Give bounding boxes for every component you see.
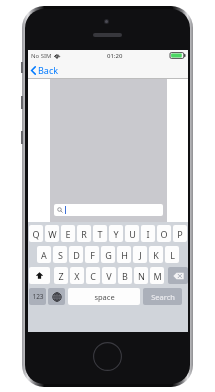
button[interactable]: R — [77, 225, 91, 242]
staticText: J — [139, 249, 142, 261]
button[interactable]: Delete — [168, 267, 188, 284]
staticText: R — [81, 228, 87, 240]
button[interactable]: Z — [54, 267, 68, 284]
button[interactable]: M — [150, 267, 164, 284]
button[interactable]: T — [93, 225, 107, 242]
staticText: V — [106, 270, 112, 282]
button[interactable]: J — [133, 246, 147, 263]
button[interactable]: P — [173, 225, 187, 242]
staticText: 01:20 — [107, 52, 123, 60]
staticText: T — [97, 228, 103, 240]
button[interactable]: 123 — [29, 288, 46, 305]
staticText: E — [65, 228, 71, 240]
staticText: W — [48, 228, 57, 240]
staticText: 123 — [32, 292, 44, 301]
staticText: L — [170, 249, 175, 261]
button[interactable]: L — [165, 246, 179, 263]
button[interactable]: A — [37, 246, 51, 263]
button[interactable]: Q — [29, 225, 43, 242]
staticText: I — [146, 228, 150, 240]
button[interactable]: O — [157, 225, 171, 242]
staticText: D — [73, 249, 80, 261]
button[interactable]: U — [125, 225, 139, 242]
staticText: Z — [58, 270, 64, 282]
button[interactable]: Search — [143, 288, 182, 305]
staticText: M — [153, 270, 162, 282]
staticText: A — [41, 249, 47, 261]
staticText: H — [121, 249, 128, 261]
button[interactable]: G — [101, 246, 115, 263]
staticText: U — [129, 228, 136, 240]
button[interactable]: I — [141, 225, 155, 242]
button[interactable]: K — [149, 246, 163, 263]
button[interactable]: Y — [109, 225, 123, 242]
staticText: B — [122, 270, 128, 282]
staticText: N — [138, 270, 145, 282]
staticText: space — [94, 292, 115, 302]
button[interactable]: E — [61, 225, 75, 242]
staticText: No SIM — [31, 52, 52, 60]
button[interactable]: B — [118, 267, 132, 284]
button[interactable]: D — [69, 246, 83, 263]
button[interactable]: H — [117, 246, 131, 263]
button[interactable]: S — [53, 246, 67, 263]
staticText: P — [177, 228, 183, 240]
staticText: Y — [113, 228, 119, 240]
staticText: F — [90, 249, 95, 261]
staticText: Back — [38, 64, 59, 76]
button[interactable]: W — [45, 225, 59, 242]
staticText: X — [74, 270, 80, 282]
button[interactable] — [54, 204, 163, 216]
staticText: G — [105, 249, 112, 261]
button[interactable]: X — [70, 267, 84, 284]
button[interactable]: Back — [28, 61, 64, 79]
button[interactable]: N — [134, 267, 148, 284]
button[interactable]: F — [85, 246, 99, 263]
staticText: C — [90, 270, 96, 282]
button[interactable]: V — [102, 267, 116, 284]
staticText: S — [58, 249, 63, 261]
button[interactable]: Next keyboard — [48, 288, 65, 305]
staticText: Q — [32, 228, 40, 240]
staticText: K — [153, 249, 159, 261]
staticText: Search — [151, 292, 175, 302]
button[interactable]: space — [68, 288, 140, 305]
button[interactable]: Shift — [29, 267, 50, 284]
staticText: O — [160, 228, 168, 240]
button[interactable]: C — [86, 267, 100, 284]
